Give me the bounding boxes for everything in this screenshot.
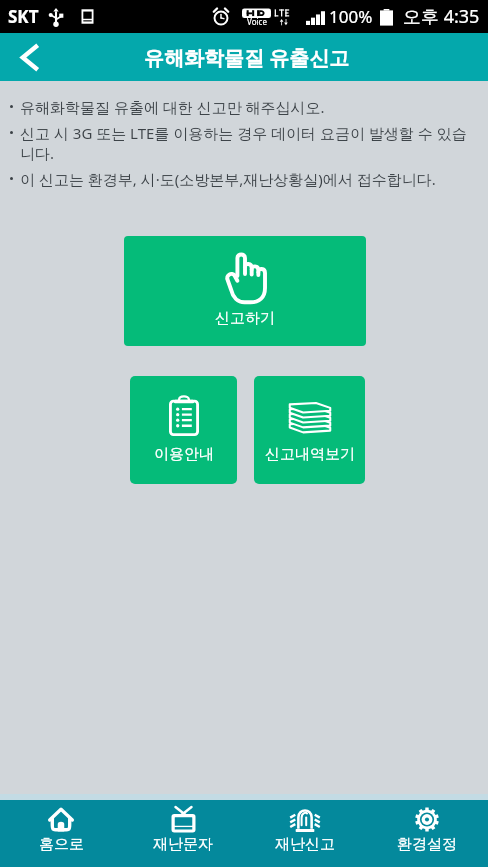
staticText: 재난신고 <box>275 835 335 854</box>
staticText: 환경설정 <box>397 835 457 854</box>
staticText: 유해화학물질 유출에 대한 신고만 해주십시오. <box>20 97 325 117</box>
staticText: 유해화학물질 유출신고 <box>144 44 350 71</box>
button[interactable]: 재난문자 <box>122 800 244 867</box>
button[interactable]: 신고하기 <box>124 236 366 346</box>
staticText: 이 신고는 환경부, 시·도(소방본부,재난상황실)에서 접수합니다. <box>20 169 436 189</box>
staticText: 신고내역보기 <box>265 445 355 464</box>
staticText: 100% <box>329 5 373 28</box>
staticText: 신고하기 <box>215 309 275 328</box>
staticText: 재난문자 <box>153 835 213 854</box>
staticText: 오후 4:35 <box>403 4 480 29</box>
staticText: Voice <box>247 16 267 27</box>
button[interactable]: Back <box>0 33 58 81</box>
staticText: SKT <box>8 5 39 28</box>
staticText: 신고 시 3G 또는 LTE를 이용하는 경우 데이터 요금이 발생할 수 있습… <box>20 123 471 163</box>
button[interactable]: 신고내역보기 <box>254 376 365 484</box>
button[interactable]: 이용안내 <box>130 376 237 484</box>
button[interactable]: 환경설정 <box>366 800 488 867</box>
button[interactable]: 홈으로 <box>0 800 122 867</box>
staticText: 홈으로 <box>39 835 84 854</box>
button[interactable]: 재난신고 <box>244 800 366 867</box>
staticText: 이용안내 <box>154 445 214 464</box>
